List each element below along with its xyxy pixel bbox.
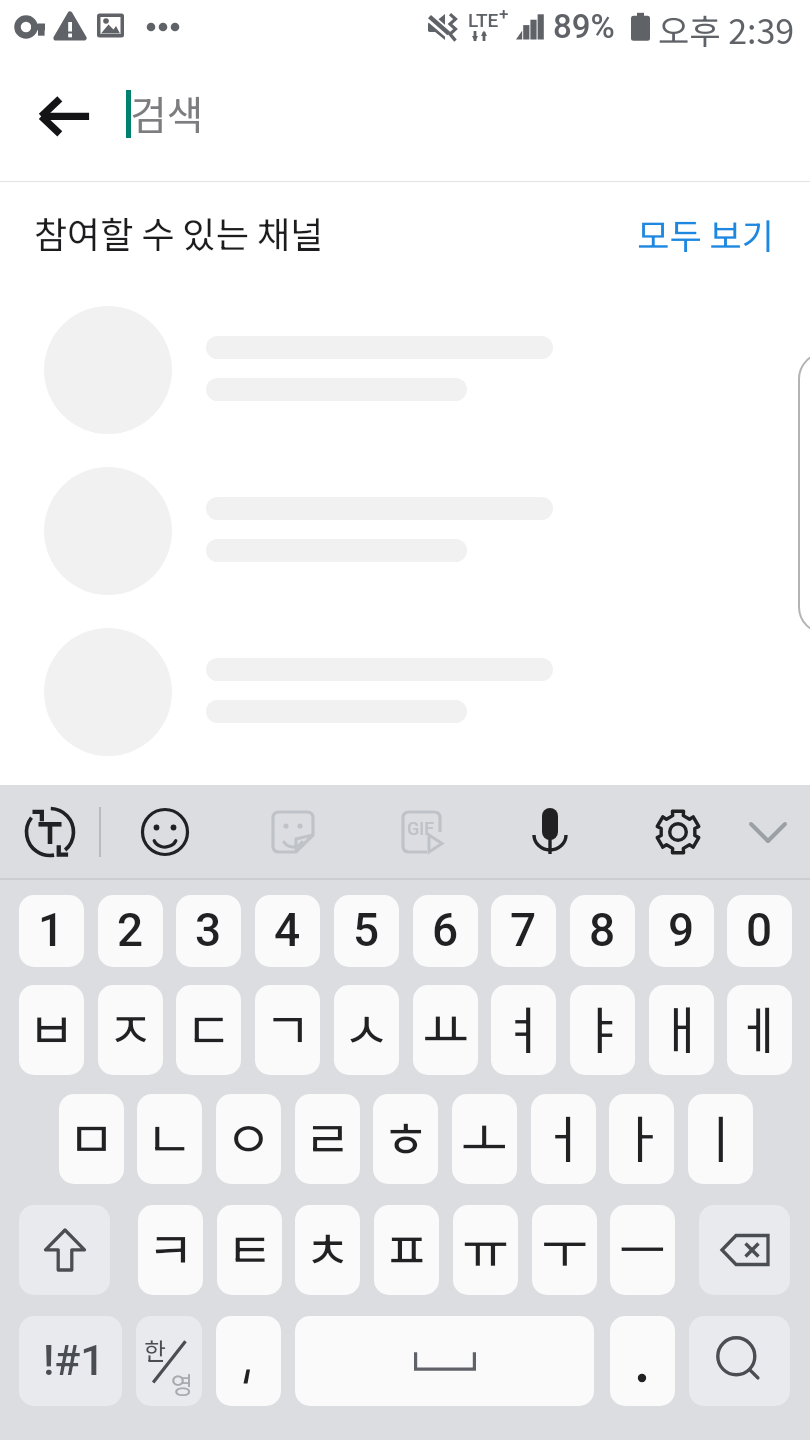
staticText: LTE — [468, 9, 499, 31]
button[interactable]: ㅂ — [19, 985, 84, 1075]
button[interactable]: 0 — [727, 895, 792, 967]
button[interactable]: 9 — [649, 895, 714, 967]
button[interactable]: ㅛ — [413, 985, 478, 1075]
staticText: ㄱ — [264, 990, 311, 1064]
button[interactable]: Korean/English — [136, 1316, 202, 1406]
button[interactable]: GIF — [370, 785, 474, 878]
staticText: ㅈ — [107, 990, 154, 1064]
staticText: ㅗ — [461, 1099, 508, 1173]
staticText: ㅇ — [225, 1099, 272, 1173]
staticText: ㅠ — [462, 1210, 509, 1284]
staticText: ㅔ — [736, 990, 783, 1064]
staticText: ㄴ — [146, 1099, 193, 1173]
button[interactable]: ㅐ — [649, 985, 714, 1075]
button[interactable]: 8 — [570, 895, 635, 967]
staticText: 3 — [195, 903, 222, 957]
button[interactable]: , — [216, 1316, 281, 1406]
staticText: ㅡ — [619, 1210, 666, 1284]
staticText: 2 — [117, 903, 144, 957]
staticText: + — [499, 4, 509, 24]
button[interactable]: Shift — [19, 1205, 110, 1295]
staticText: 8 — [589, 903, 616, 957]
button[interactable]: ㅈ — [98, 985, 163, 1075]
button[interactable]: ㄷ — [176, 985, 241, 1075]
button[interactable]: ㄴ — [137, 1094, 202, 1184]
staticText: 참여할 수 있는 채널 — [34, 206, 324, 258]
button[interactable]: ㄹ — [295, 1094, 360, 1184]
button[interactable]: ㅕ — [491, 985, 556, 1075]
staticText: 9 — [668, 903, 695, 957]
button[interactable]: 참여할 수 있는 채널 — [34, 206, 324, 258]
staticText: ㅛ — [422, 990, 469, 1064]
button[interactable]: 4 — [255, 895, 320, 967]
staticText: 89% — [553, 7, 615, 46]
button[interactable]: ㅔ — [727, 985, 792, 1075]
button[interactable]: 모두 보기 — [637, 208, 774, 259]
button[interactable]: 2 — [98, 895, 163, 967]
staticText: ㅊ — [304, 1210, 351, 1284]
staticText: ㅜ — [541, 1210, 588, 1284]
button[interactable]: ㅗ — [452, 1094, 517, 1184]
button[interactable]: ㄱ — [255, 985, 320, 1075]
staticText: ㅅ — [343, 990, 390, 1064]
staticText: ㅎ — [382, 1099, 429, 1173]
button[interactable]: 3 — [176, 895, 241, 967]
button[interactable]: Space — [295, 1316, 594, 1406]
button[interactable]: ㅣ — [688, 1094, 753, 1184]
button[interactable]: ㅅ — [334, 985, 399, 1075]
button[interactable]: ㅍ — [374, 1205, 439, 1295]
staticText: ㅑ — [579, 990, 626, 1064]
button[interactable]: Emoji — [113, 785, 217, 878]
staticText: ㅌ — [226, 1210, 273, 1284]
button[interactable]: ㅏ — [609, 1094, 674, 1184]
staticText: 오후 2:39 — [658, 5, 795, 54]
staticText: ㄷ — [185, 990, 232, 1064]
button[interactable]: Voice input — [498, 785, 602, 878]
button[interactable]: Stickers — [241, 785, 345, 878]
button[interactable]: 1 — [19, 895, 84, 967]
staticText: ㅍ — [383, 1210, 430, 1284]
button[interactable]: Translate — [0, 785, 102, 878]
staticText: ㅏ — [618, 1099, 665, 1173]
staticText: ㅕ — [500, 990, 547, 1064]
button[interactable]: !#1 — [19, 1316, 122, 1406]
staticText: 0 — [746, 903, 773, 957]
button[interactable]: ㅋ — [138, 1205, 203, 1295]
button[interactable]: ㅎ — [373, 1094, 438, 1184]
button[interactable]: ㅑ — [570, 985, 635, 1075]
staticText: ㅣ — [697, 1099, 744, 1173]
staticText: ㅓ — [540, 1099, 587, 1173]
staticText: ㅂ — [28, 990, 75, 1064]
staticText: 4 — [274, 903, 301, 957]
button[interactable]: ㅠ — [453, 1205, 518, 1295]
button[interactable]: 6 — [413, 895, 478, 967]
button[interactable]: ㅌ — [217, 1205, 282, 1295]
button[interactable]: ㅁ — [59, 1094, 124, 1184]
staticText: 영 — [171, 1366, 194, 1401]
staticText: 5 — [353, 903, 380, 957]
button[interactable]: Keyboard settings — [626, 785, 730, 878]
staticText: 검색 — [130, 84, 204, 142]
staticText: !#1 — [43, 1335, 105, 1385]
staticText: ㅁ — [68, 1099, 115, 1173]
button[interactable]: 7 — [491, 895, 556, 967]
staticText: 모두 보기 — [637, 208, 774, 259]
button[interactable]: ㅜ — [532, 1205, 597, 1295]
button[interactable]: 5 — [334, 895, 399, 967]
staticText: ㄹ — [304, 1099, 351, 1173]
staticText: 7 — [510, 903, 537, 957]
button[interactable]: Backspace — [699, 1205, 790, 1295]
button[interactable]: Search — [689, 1316, 790, 1406]
staticText: GIF — [407, 818, 435, 839]
staticText: ㅐ — [658, 990, 705, 1064]
button[interactable]: ㅓ — [531, 1094, 596, 1184]
staticText: 한 — [144, 1332, 167, 1367]
button[interactable]: Hide keyboard — [716, 785, 810, 878]
staticText: 1 — [38, 903, 65, 957]
button[interactable]: ㅊ — [295, 1205, 360, 1295]
button[interactable]: ㅇ — [216, 1094, 281, 1184]
button[interactable]: . — [610, 1316, 675, 1406]
staticText: ㅋ — [147, 1210, 194, 1284]
button[interactable]: ㅡ — [610, 1205, 675, 1295]
button[interactable]: Back — [18, 62, 110, 154]
